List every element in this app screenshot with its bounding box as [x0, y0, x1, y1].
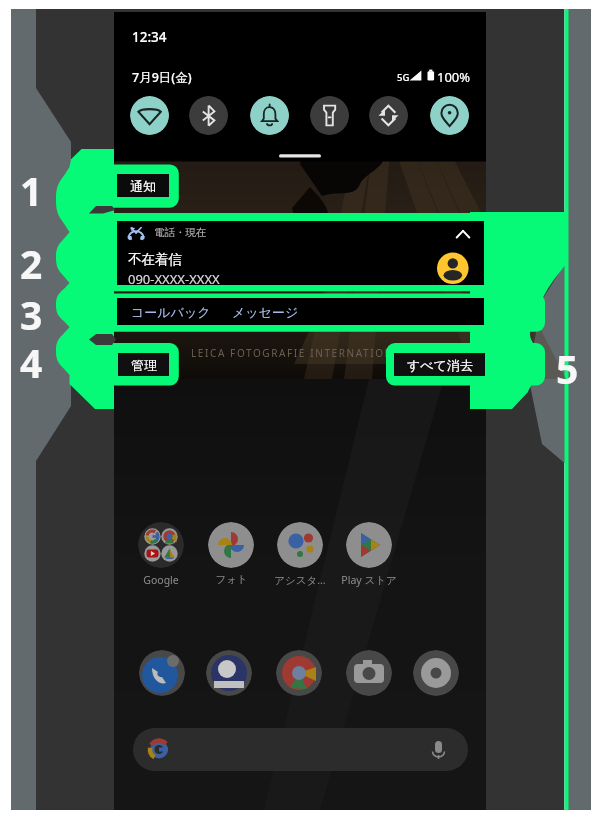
button[interactable]: フォト	[208, 522, 254, 568]
button[interactable]: メッセージ	[206, 650, 252, 696]
staticText: 5G	[397, 71, 410, 84]
staticText: Play ストア	[341, 573, 397, 587]
staticText: 4	[20, 336, 43, 380]
staticText: 1	[20, 164, 43, 208]
staticText: 管理	[131, 357, 157, 373]
button[interactable]: Google 検索	[133, 728, 468, 771]
staticText: 2	[20, 237, 43, 281]
button[interactable]: Bluetooth	[189, 96, 228, 135]
staticText: メッセージ	[232, 304, 299, 320]
button[interactable]: 管理	[118, 353, 169, 376]
staticText: 3	[20, 288, 43, 332]
button[interactable]: 通知	[117, 174, 169, 197]
staticText: すべて消去	[407, 357, 473, 373]
button[interactable]: Play ストア	[346, 522, 392, 568]
button[interactable]: 電話	[139, 650, 185, 696]
staticText: LEICA FOTOGRAFIE INTERNATIONAL	[191, 346, 409, 360]
button[interactable]: カメラ	[346, 650, 392, 696]
button[interactable]: メッセージ	[225, 298, 305, 325]
button[interactable]: ライト	[310, 96, 349, 135]
button[interactable]: 自動回転	[369, 96, 408, 135]
button[interactable]: 位置情報	[430, 96, 469, 135]
button[interactable]: アシスタ…	[277, 522, 323, 568]
button[interactable]: 設定	[413, 650, 459, 696]
button[interactable]: 電話・現在	[117, 221, 484, 285]
button[interactable]: すべて消去	[394, 353, 485, 376]
button[interactable]: Chrome	[276, 650, 322, 696]
staticText: アシスタ…	[274, 573, 326, 587]
staticText: 12:34	[132, 28, 167, 46]
staticText: Google	[143, 573, 179, 587]
button[interactable]: コールバック	[123, 298, 211, 325]
button[interactable]: Wi-Fi	[130, 96, 169, 135]
staticText: 100%	[437, 68, 471, 86]
staticText: 5	[556, 342, 579, 386]
button[interactable]: Google	[138, 522, 184, 568]
button[interactable]: 通知	[250, 96, 289, 135]
staticText: 電話・現在	[154, 226, 207, 239]
staticText: コールバック	[131, 304, 211, 320]
staticText: 通知	[130, 178, 156, 194]
staticText: 090-XXXX-XXXX	[128, 270, 220, 288]
staticText: 7月9日(金)	[132, 69, 192, 86]
staticText: 不在着信	[128, 251, 182, 268]
staticText: フォト	[215, 573, 248, 586]
